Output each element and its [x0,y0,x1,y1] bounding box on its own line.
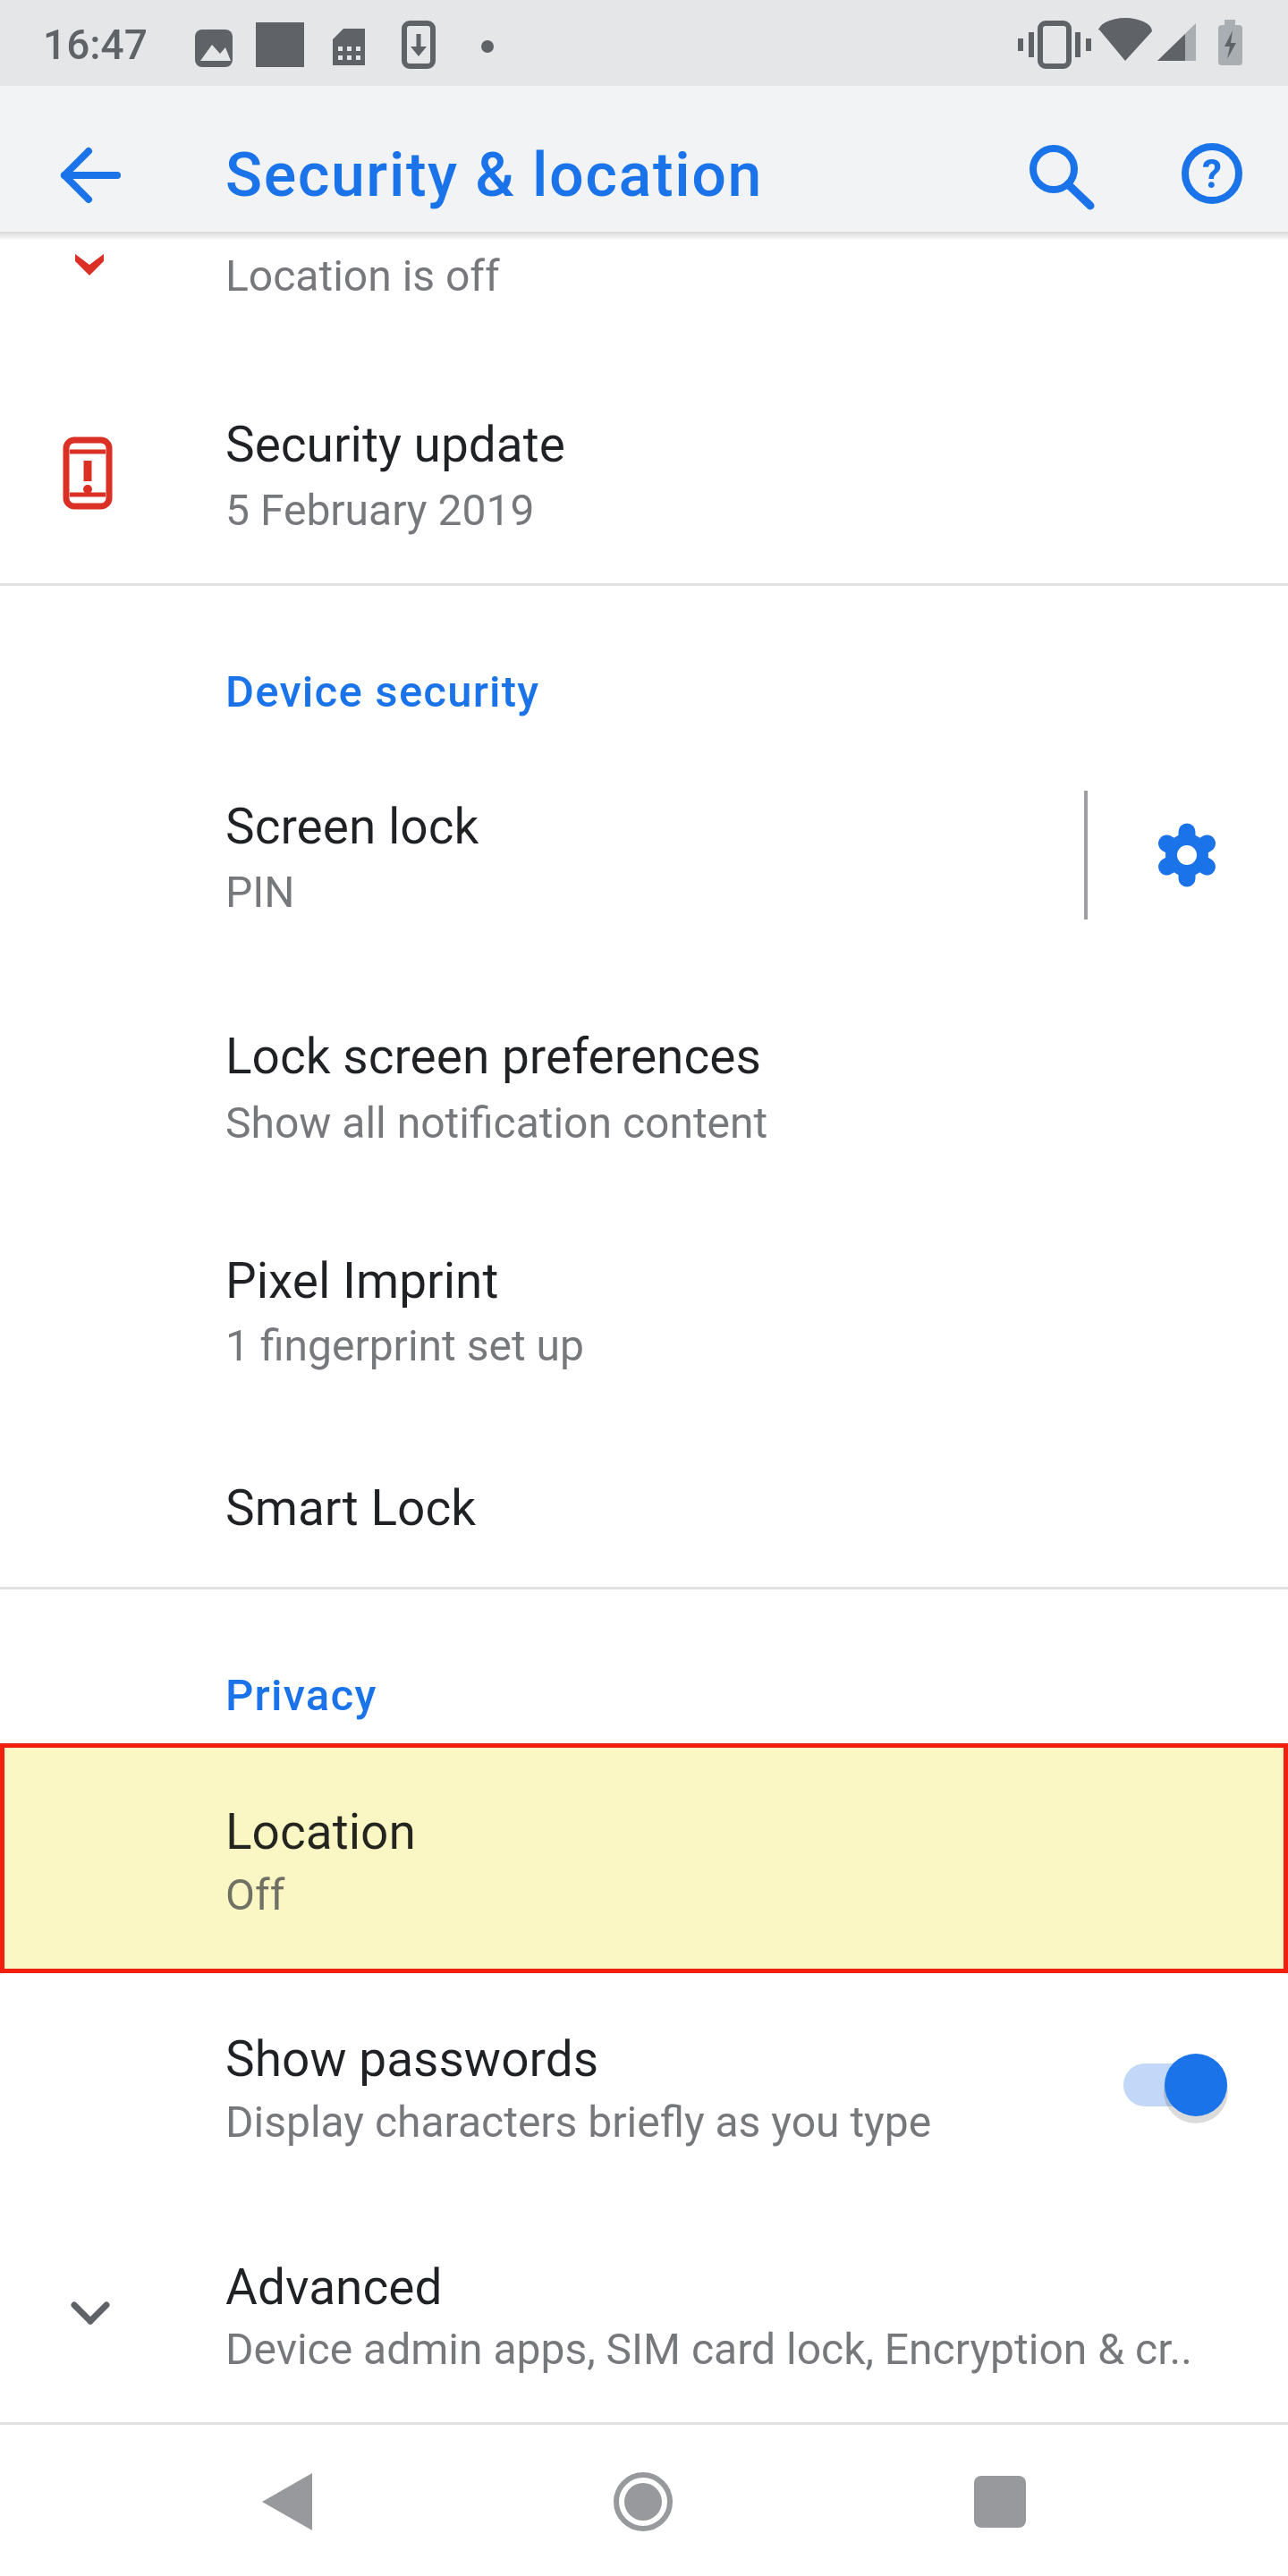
staticText: Smart Lock [225,1479,477,1537]
button[interactable] [1169,132,1255,218]
staticText: Location is off [225,250,500,301]
staticText: Device admin apps, SIM card lock, Encryp… [225,2324,1192,2374]
staticText: Pixel Imprint [225,1252,499,1309]
button[interactable] [225,2439,350,2564]
staticText: 1 fingerprint set up [225,1320,584,1370]
button[interactable] [0,1221,1288,1391]
button[interactable] [47,132,133,218]
staticText: 16:47 [43,21,148,69]
staticText: Screen lock [225,798,479,855]
staticText: Advanced [225,2258,443,2316]
staticText: Security & location [225,140,763,211]
staticText: Display characters briefly as you type [225,2097,932,2147]
staticText: Location [225,1803,416,1860]
staticText: Show all notification content [225,1097,768,1148]
staticText: 5 February 2019 [225,485,535,535]
staticText: Lock screen preferences [225,1028,761,1085]
button[interactable] [0,1743,1288,1973]
staticText: ? [1202,151,1222,198]
button[interactable] [0,1999,1288,2169]
button[interactable] [937,2439,1063,2564]
staticText: Off [225,1869,285,1919]
staticText: Security update [225,416,565,473]
button[interactable] [580,2439,706,2564]
button[interactable] [0,2236,1288,2406]
staticText: Device security [225,666,540,717]
button[interactable] [0,765,1038,935]
button[interactable] [1111,2039,1245,2138]
staticText: Privacy [225,1670,377,1721]
staticText: PIN [225,867,295,917]
button[interactable] [0,997,1288,1167]
button[interactable] [1144,812,1230,898]
button[interactable] [0,1445,1288,1579]
button[interactable] [1019,132,1105,218]
staticText: Show passwords [225,2030,599,2088]
button[interactable] [0,376,1288,572]
